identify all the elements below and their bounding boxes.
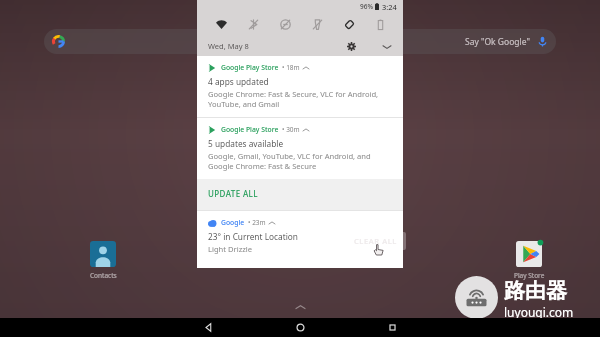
button[interactable]: Google Play Store	[197, 56, 403, 117]
staticText: Contacts	[90, 271, 117, 280]
staticText: 3:24	[382, 2, 397, 12]
staticText: Play Store	[514, 271, 545, 280]
button[interactable]: Bluetooth	[237, 13, 269, 36]
button[interactable]: Settings	[344, 39, 359, 54]
button[interactable]: Google Play Store	[197, 118, 403, 179]
staticText: Google Chrome: Fast & Secure, VLC for An…	[208, 89, 393, 109]
button[interactable]: UPDATE ALL	[197, 179, 403, 210]
staticText: 96%	[360, 2, 373, 11]
staticText: 23° in Current Location	[208, 231, 298, 242]
button[interactable]: Flashlight	[301, 13, 333, 36]
button[interactable]: Recents	[346, 318, 438, 337]
staticText: • 18m	[282, 63, 300, 72]
staticText: CLEAR ALL	[354, 236, 397, 246]
button[interactable]: Do not disturb	[269, 13, 301, 36]
staticText: UPDATE ALL	[208, 188, 258, 199]
staticText: Google Play Store	[221, 63, 279, 72]
staticText: Wed, May 8	[208, 41, 249, 51]
button[interactable]: CLEAR ALL	[345, 232, 406, 250]
staticText: Say "Ok Google"	[465, 36, 530, 48]
button[interactable]: Contacts	[73, 241, 133, 280]
button[interactable]: Auto rotate	[333, 13, 365, 36]
button[interactable]: Google	[197, 211, 403, 262]
staticText: 路由器	[504, 278, 567, 304]
button[interactable]: Wi-Fi	[205, 13, 237, 36]
staticText: 5 updates available	[208, 138, 284, 149]
button[interactable]: Battery saver	[365, 13, 395, 36]
staticText: Google Play Store	[221, 125, 279, 134]
button[interactable]: Say "Ok Google"	[44, 29, 556, 54]
button[interactable]: Home	[254, 318, 346, 337]
staticText: luyouqi.com	[504, 304, 574, 320]
staticText: Google, Gmail, YouTube, VLC for Android,…	[208, 151, 393, 171]
staticText: 4 apps updated	[208, 76, 269, 87]
staticText: Light Drizzle	[208, 244, 253, 254]
staticText: Google	[221, 218, 245, 227]
button[interactable]: Back	[162, 318, 254, 337]
staticText: • 30m	[282, 125, 300, 134]
button[interactable]: Expand	[379, 39, 394, 54]
staticText: • 23m	[248, 218, 266, 227]
button[interactable]: Play Store	[499, 241, 559, 280]
